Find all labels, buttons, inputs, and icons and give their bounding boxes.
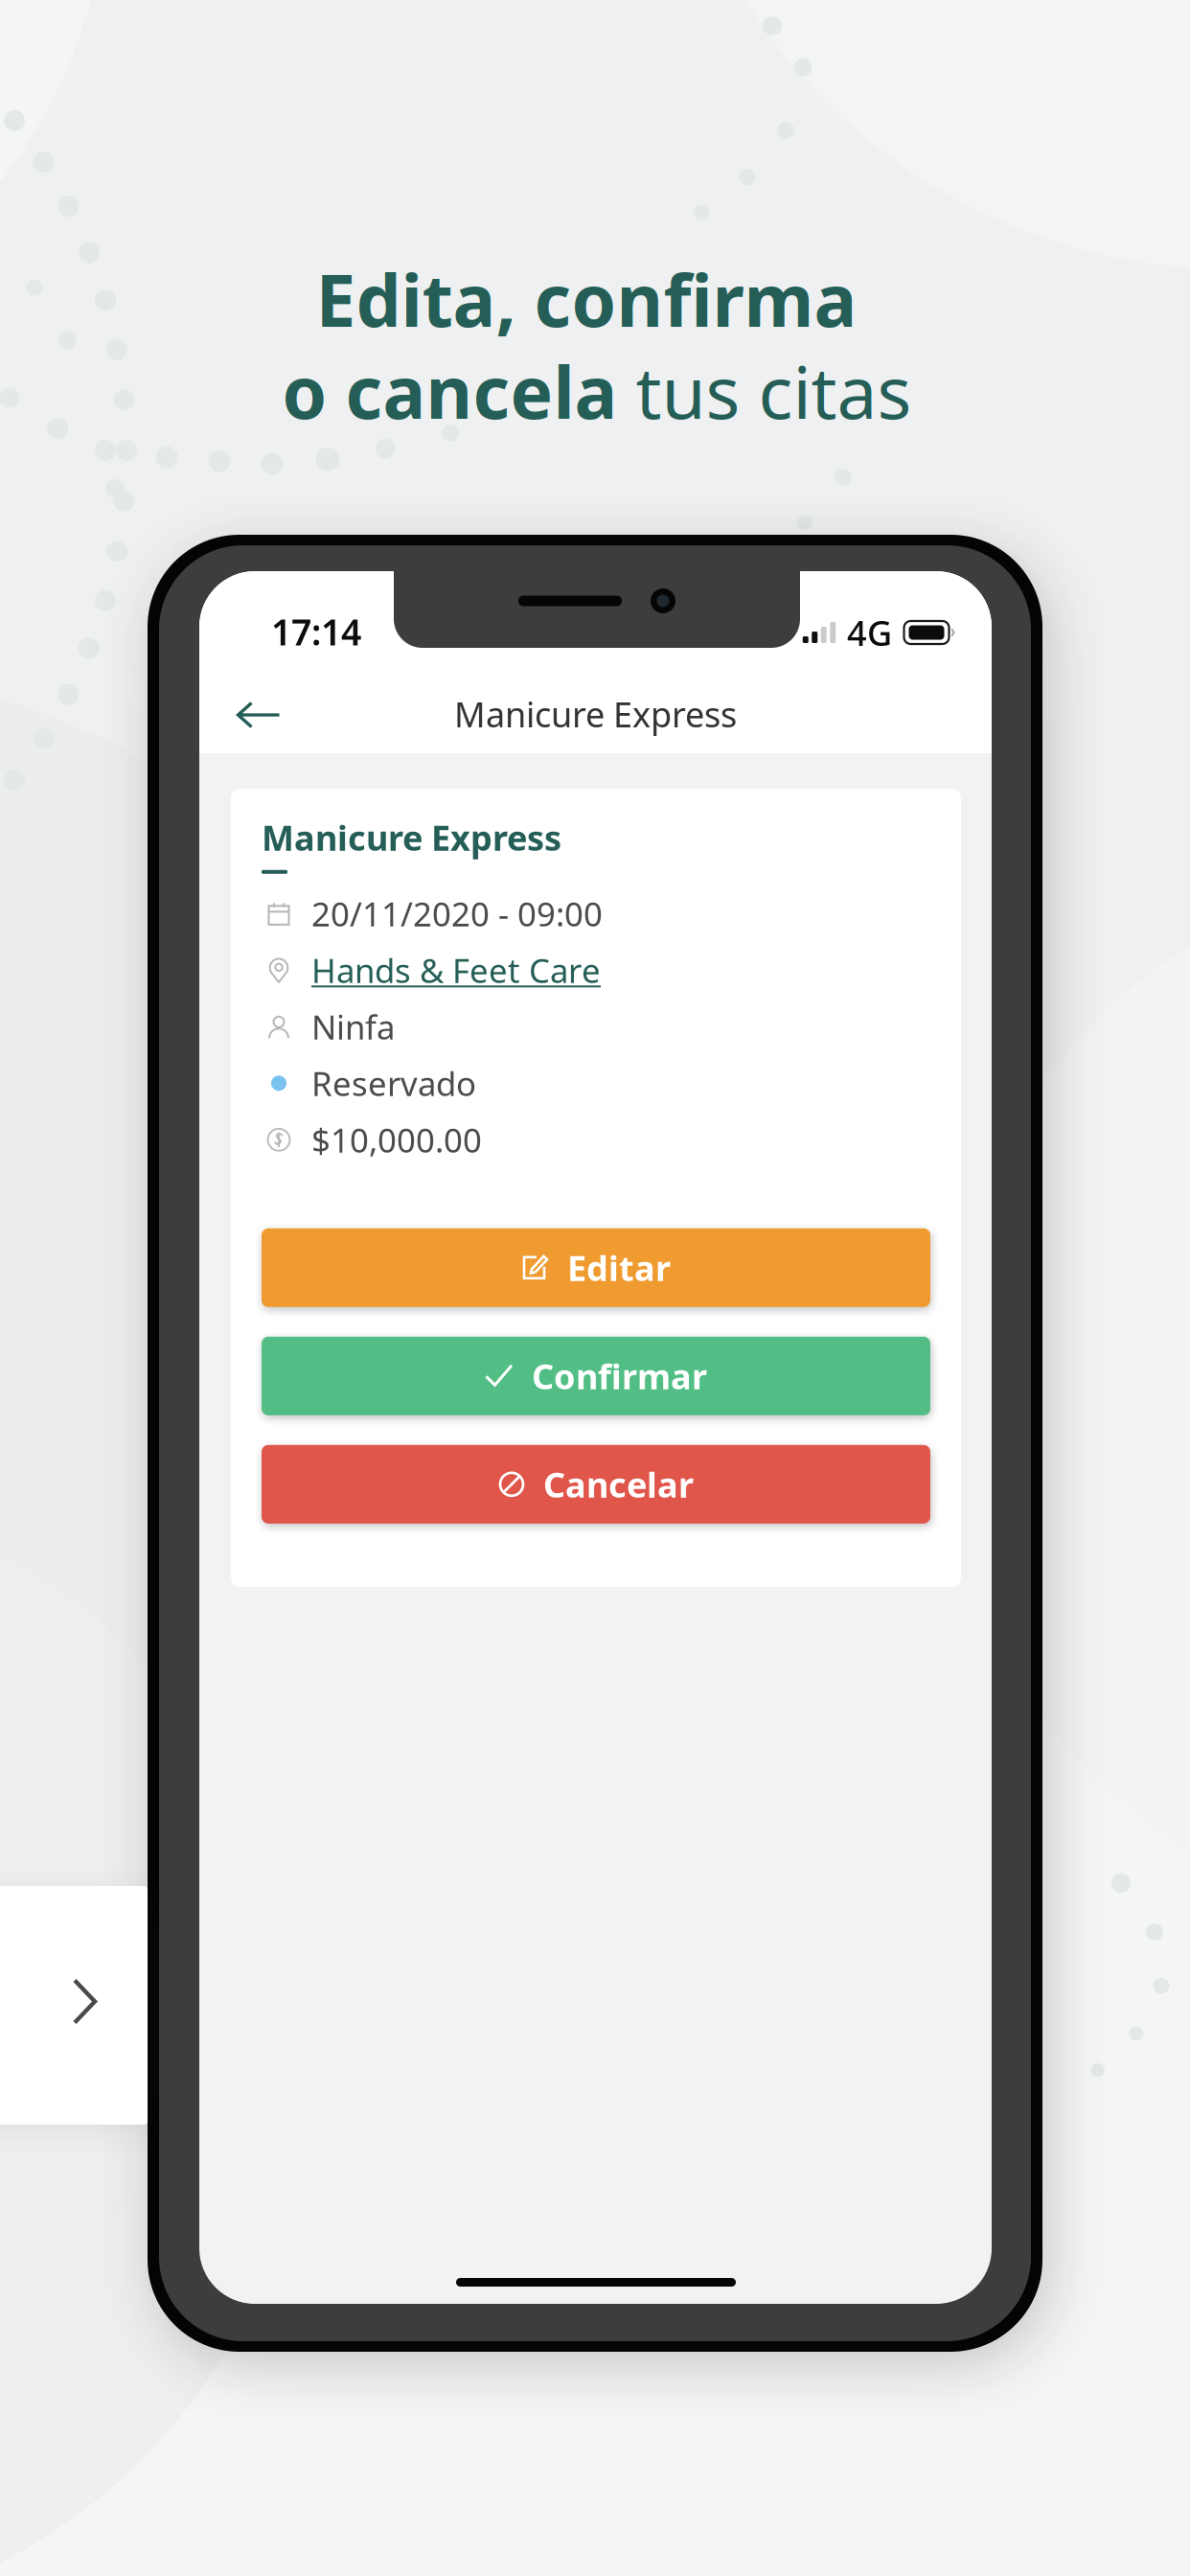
button[interactable]: Cancelar	[262, 1445, 930, 1524]
button[interactable]: Editar	[262, 1228, 930, 1307]
staticText: Hands & Feet Care	[311, 948, 601, 992]
staticText: 4G	[847, 610, 892, 655]
button[interactable]: Next	[0, 1886, 148, 2125]
staticText: $10,000.00	[311, 1118, 482, 1162]
staticText: Reservado	[311, 1061, 476, 1105]
staticText: Edita, confirma	[316, 251, 857, 347]
staticText: Manicure Express	[454, 691, 737, 737]
staticText: o cancela tus citas	[282, 343, 912, 439]
staticText: Cancelar	[543, 1461, 694, 1507]
staticText: Ninfa	[311, 1005, 395, 1049]
button[interactable]: Confirmar	[262, 1337, 930, 1415]
staticText: Editar	[567, 1245, 671, 1291]
staticText: Confirmar	[532, 1353, 707, 1399]
button[interactable]: Back	[199, 571, 992, 2304]
staticText: 20/11/2020 - 09:00	[311, 892, 603, 936]
staticText: 17:14	[271, 608, 361, 655]
staticText: Manicure Express	[262, 815, 561, 860]
